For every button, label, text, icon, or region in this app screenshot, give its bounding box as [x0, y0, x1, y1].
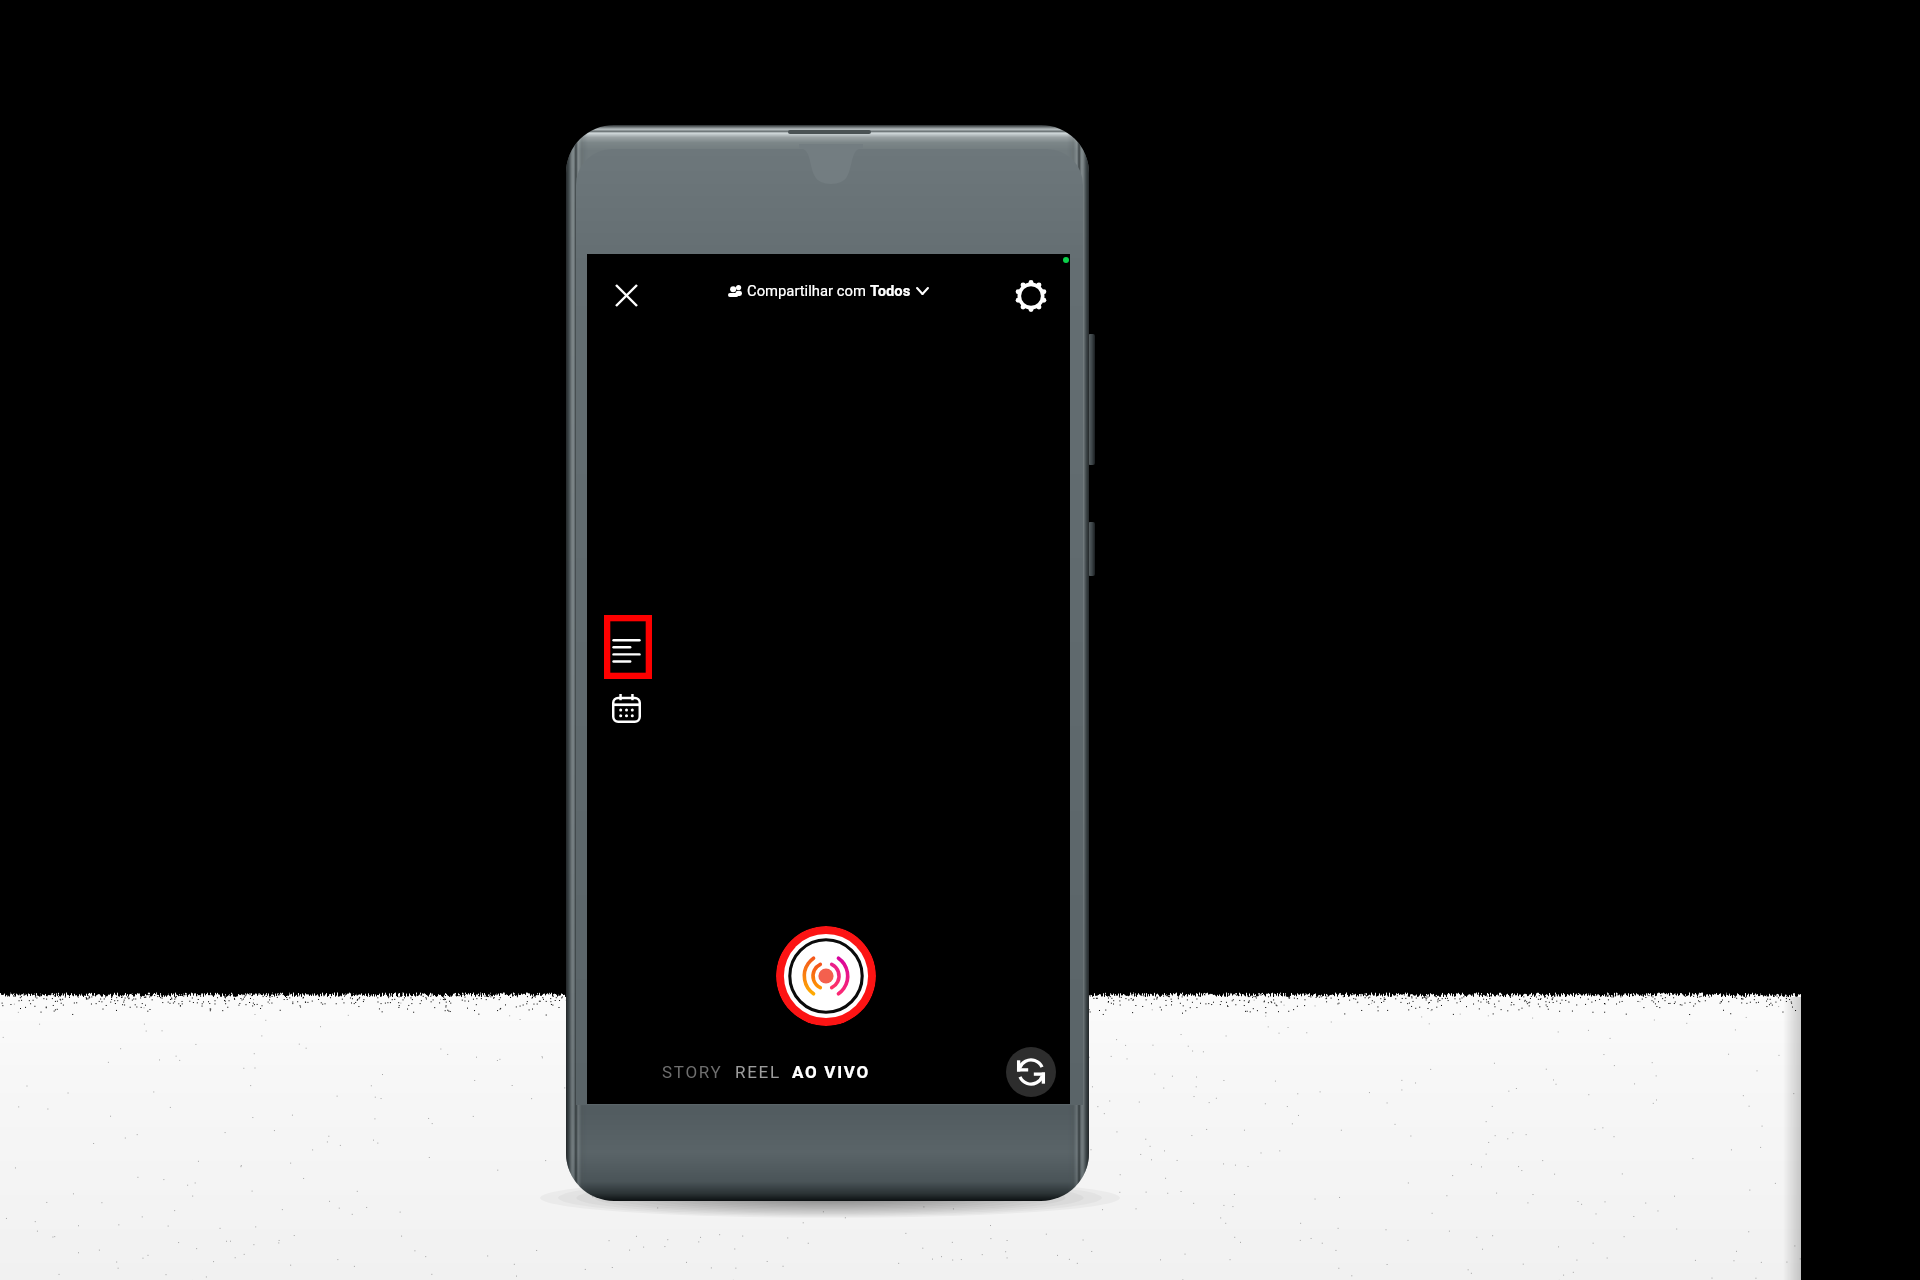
button[interactable]: Settings	[1008, 273, 1053, 318]
button[interactable]: AO VIVO	[788, 1055, 874, 1089]
button[interactable]: Flip camera	[1006, 1047, 1056, 1097]
button[interactable]: Compartilhar com	[721, 277, 936, 304]
staticText: Compartilhar com	[747, 282, 870, 299]
button[interactable]: Start live video	[776, 926, 876, 1026]
button[interactable]: Add title	[596, 607, 660, 687]
staticText: Todos	[870, 282, 911, 299]
staticText: AO VIVO	[792, 1062, 870, 1082]
staticText: REEL	[735, 1062, 781, 1082]
staticText: STORY	[662, 1062, 723, 1082]
button[interactable]: Schedule live video	[604, 686, 649, 731]
button[interactable]: STORY	[658, 1055, 727, 1089]
button[interactable]: REEL	[731, 1055, 785, 1089]
button[interactable]: Close	[604, 273, 649, 318]
